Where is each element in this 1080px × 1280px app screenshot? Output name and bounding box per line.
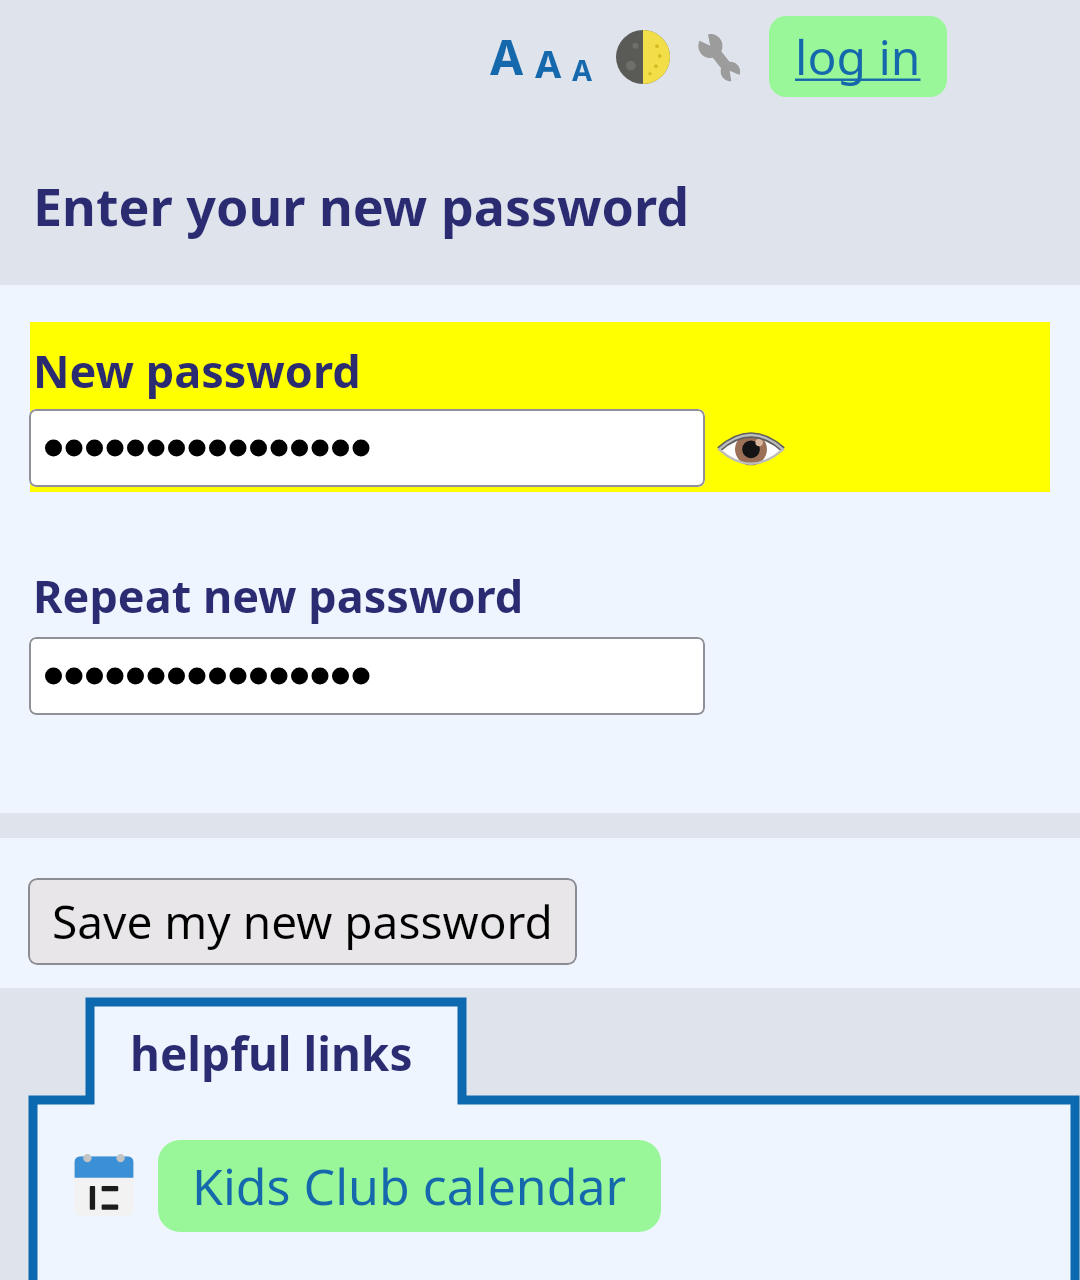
staticText: A	[572, 50, 593, 89]
staticText: Repeat new password	[33, 565, 524, 626]
staticText: New password	[33, 340, 361, 401]
staticText: Kids Club calendar	[192, 1152, 627, 1220]
button[interactable]: Settings	[689, 27, 749, 87]
button[interactable]: Show password	[714, 411, 788, 485]
button[interactable]: Kids Club calendar	[158, 1140, 661, 1232]
staticText: helpful links	[130, 1022, 413, 1085]
button[interactable]: Password field	[29, 637, 705, 715]
staticText: log in	[795, 24, 921, 89]
button[interactable]: Toggle dark mode	[613, 27, 673, 87]
staticText: A	[535, 37, 562, 89]
button[interactable]: Save my new password	[28, 878, 577, 965]
button[interactable]: log in	[769, 16, 947, 97]
staticText: A	[490, 24, 524, 89]
button[interactable]: Password field	[29, 409, 705, 487]
staticText: Enter your new password	[33, 170, 690, 241]
button[interactable]: Change text size	[488, 18, 595, 95]
staticText: Save my new password	[52, 890, 553, 953]
